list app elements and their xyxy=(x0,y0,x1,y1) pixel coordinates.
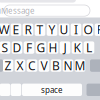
button[interactable]: B xyxy=(51,59,61,72)
staticText: H xyxy=(48,40,57,55)
staticText: W xyxy=(0,22,9,38)
button[interactable]: G xyxy=(36,41,46,54)
button[interactable]: N xyxy=(63,59,73,72)
staticText: space xyxy=(41,84,63,95)
button[interactable]: Y xyxy=(47,23,57,36)
staticText: P xyxy=(96,22,100,38)
button[interactable]: D xyxy=(12,41,22,54)
button[interactable]: I xyxy=(71,23,81,36)
staticText: U xyxy=(59,22,68,38)
button[interactable]: R xyxy=(23,23,33,36)
button[interactable]: X xyxy=(15,59,25,72)
staticText: V xyxy=(40,58,47,73)
staticText: C xyxy=(28,58,36,73)
staticText: O xyxy=(83,22,92,38)
button[interactable] xyxy=(0,59,3,72)
button[interactable]: Z xyxy=(3,59,13,72)
staticText: D xyxy=(12,40,21,55)
button[interactable]: F xyxy=(24,41,34,54)
staticText: R xyxy=(24,22,31,38)
button[interactable]: L xyxy=(84,41,94,54)
button[interactable]: space xyxy=(22,84,82,96)
staticText: B xyxy=(52,58,60,73)
staticText: iMessage xyxy=(0,5,35,16)
button[interactable]: M xyxy=(75,59,85,72)
staticText: S xyxy=(1,40,8,55)
staticText: N xyxy=(63,58,72,73)
button[interactable]: T xyxy=(35,23,45,36)
button[interactable]: H xyxy=(48,41,58,54)
staticText: M xyxy=(74,58,85,73)
button[interactable]: O xyxy=(83,23,93,36)
button[interactable]: W xyxy=(0,23,9,36)
staticText: J xyxy=(63,40,66,55)
staticText: L xyxy=(86,40,92,55)
staticText: I xyxy=(74,22,78,38)
staticText: F xyxy=(26,40,32,55)
button[interactable]: V xyxy=(39,59,49,72)
button[interactable]: K xyxy=(72,41,82,54)
button[interactable]: U xyxy=(59,23,69,36)
button[interactable]: J xyxy=(60,41,70,54)
staticText: Z xyxy=(4,58,11,73)
staticText: E xyxy=(12,22,19,38)
button[interactable]: E xyxy=(11,23,21,36)
button[interactable] xyxy=(90,59,100,72)
button[interactable]: S xyxy=(0,41,10,54)
staticText: Y xyxy=(48,22,55,38)
staticText: T xyxy=(36,22,43,38)
button[interactable]: C xyxy=(27,59,37,72)
button[interactable]: P xyxy=(95,23,100,36)
staticText: G xyxy=(36,40,45,55)
button[interactable] xyxy=(86,84,100,96)
staticText: X xyxy=(16,58,23,73)
staticText: K xyxy=(73,40,80,55)
